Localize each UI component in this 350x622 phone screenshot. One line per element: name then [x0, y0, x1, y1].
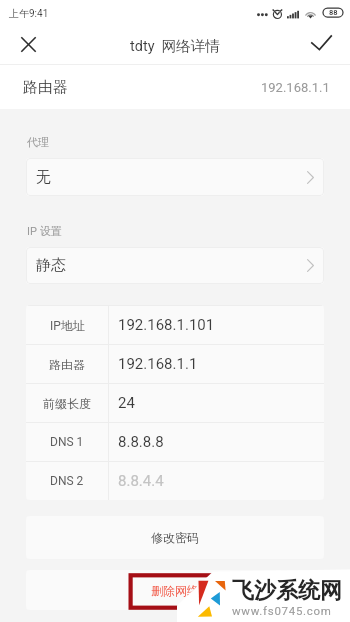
button[interactable]: 路由器 [0, 65, 350, 109]
staticText: 修改密码 [151, 530, 199, 545]
staticText: 88 [329, 8, 338, 17]
staticText: DNS 1 [50, 435, 84, 449]
button[interactable]: DNS 2 [26, 462, 324, 500]
staticText: 24 [118, 394, 135, 412]
staticText: 飞沙系统网 [232, 577, 342, 605]
staticText: 无 [36, 168, 51, 187]
staticText: 代理 [27, 135, 49, 149]
button[interactable]: 前缀长度 [26, 384, 324, 422]
staticText: 上午9:41 [9, 7, 49, 20]
staticText: 路由器 [49, 357, 85, 372]
staticText: 路由器 [23, 78, 68, 97]
button[interactable]: IP地址 [26, 306, 324, 344]
staticText: IP地址 [50, 318, 85, 333]
button[interactable]: Close [7, 29, 50, 59]
staticText: www.fs0745.com [232, 604, 332, 617]
staticText: DNS 2 [50, 474, 84, 488]
button[interactable]: 静态 [26, 247, 324, 284]
staticText: 192.168.1.101 [118, 316, 215, 334]
staticText: 192.168.1.1 [261, 80, 330, 95]
staticText: 前缀长度 [43, 396, 91, 411]
staticText: tdty 网络详情 [130, 37, 220, 55]
staticText: 静态 [36, 256, 66, 275]
staticText: 删除网络 [151, 583, 199, 598]
button[interactable]: 删除网络 [26, 570, 324, 610]
button[interactable]: DNS 1 [26, 423, 324, 461]
staticText: 8.8.4.4 [118, 472, 164, 490]
button[interactable]: 路由器 [26, 345, 324, 383]
staticText: 192.168.1.1 [118, 355, 198, 373]
button[interactable]: 无 [26, 158, 324, 196]
staticText: 8.8.8.8 [118, 433, 164, 451]
staticText: IP 设置 [27, 224, 62, 238]
button[interactable]: Confirm [300, 28, 343, 58]
button[interactable]: 修改密码 [26, 516, 324, 559]
